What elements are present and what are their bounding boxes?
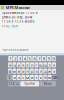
staticText: 3 [19, 56, 21, 61]
staticText: э [53, 68, 55, 74]
button[interactable]: р [30, 69, 34, 74]
button[interactable]: т [34, 75, 38, 80]
staticText: Пробел [24, 82, 35, 85]
staticText: 6 [33, 56, 35, 61]
button[interactable]: е [26, 62, 30, 67]
button[interactable]: щ [43, 62, 47, 67]
staticText: б [44, 75, 46, 80]
staticText: 1 [9, 56, 11, 61]
button[interactable]: ю [48, 75, 52, 80]
button[interactable]: 5 [27, 56, 32, 61]
staticText: Отдел [11, 24, 19, 28]
button[interactable]: х [52, 62, 56, 67]
staticText: 2 [14, 56, 16, 61]
button[interactable]: 8 [42, 56, 46, 61]
button[interactable]: к [21, 62, 25, 67]
staticText: ь [40, 75, 42, 80]
staticText: 8 [43, 56, 45, 61]
button[interactable]: й [8, 62, 12, 67]
button[interactable]: б [43, 75, 47, 80]
button[interactable]: и [30, 75, 34, 80]
staticText: 5 [29, 56, 31, 61]
button[interactable]: MPS Moscow [0, 5, 64, 10]
button[interactable]: ь [39, 75, 43, 80]
staticText: Кому: [2, 24, 10, 28]
staticText: м [26, 75, 29, 80]
staticText: е [27, 62, 29, 67]
staticText: я [13, 75, 15, 80]
button[interactable]: 1 [8, 56, 12, 61]
staticText: и [31, 75, 33, 80]
button[interactable]: 6 [32, 56, 36, 61]
staticText: 123 [8, 82, 14, 85]
button[interactable]: з [48, 62, 52, 67]
staticText: к [22, 62, 24, 67]
button[interactable]: ы [12, 69, 16, 74]
staticText: о [35, 68, 37, 74]
staticText: в [18, 68, 20, 74]
button[interactable]: я [12, 75, 16, 80]
staticText: п [27, 68, 29, 74]
staticText: ⇧ [8, 75, 11, 80]
button[interactable]: 2 [13, 56, 17, 61]
staticText: а [22, 68, 24, 74]
staticText: г [35, 62, 37, 67]
button[interactable]: г [34, 62, 38, 67]
button[interactable]: Пробел [20, 81, 39, 86]
staticText: щ [43, 62, 47, 67]
button[interactable]: 9 [47, 56, 51, 61]
staticText: 7 [38, 56, 40, 61]
staticText: т [35, 75, 37, 80]
button[interactable]: ☺ [15, 81, 20, 86]
staticText: с [22, 75, 24, 80]
staticText: й [9, 62, 11, 67]
button[interactable]: п [26, 69, 30, 74]
button[interactable]: н [30, 62, 34, 67]
staticText: х [53, 62, 55, 67]
staticText: ф [8, 68, 11, 74]
button[interactable]: м [26, 75, 30, 80]
button[interactable]: 123 [8, 81, 15, 86]
button[interactable]: а [21, 69, 25, 74]
button[interactable]: 3 [18, 56, 22, 61]
staticText: ш [39, 62, 43, 67]
staticText: д [44, 68, 46, 74]
button[interactable]: ч [17, 75, 21, 80]
staticText: н [31, 62, 33, 67]
button[interactable]: Ввод [40, 81, 56, 86]
staticText: ⌫ [52, 75, 58, 80]
button[interactable]: л [39, 69, 43, 74]
staticText: з [49, 62, 51, 67]
staticText: 9 [48, 56, 50, 61]
staticText: ю [48, 75, 51, 80]
staticText: ы [13, 68, 16, 74]
staticText: Приложение до 17:00 и [2, 11, 38, 15]
staticText: 4 [24, 56, 26, 61]
button[interactable]: ц [12, 62, 16, 67]
staticText: р [31, 68, 33, 74]
button[interactable]: в [17, 69, 21, 74]
button[interactable]: д [43, 69, 47, 74]
staticText: 11:58 в 15–16 апреля [2, 20, 35, 23]
button[interactable]: ⌫ [52, 75, 57, 80]
staticText: Ввод [44, 82, 52, 85]
staticText: ☺ [16, 82, 19, 85]
button[interactable]: э [52, 69, 56, 74]
button[interactable]: ж [48, 69, 52, 74]
button[interactable]: о [34, 69, 38, 74]
staticText: ц [13, 62, 15, 67]
staticText: MPS Moscow [5, 5, 29, 10]
button[interactable]: с [21, 75, 25, 80]
button[interactable]: 4 [23, 56, 27, 61]
button[interactable]: ⇧ [7, 75, 12, 80]
button[interactable]: ш [39, 62, 43, 67]
button[interactable]: 7 [37, 56, 41, 61]
staticText: детали до след. срока [2, 15, 32, 19]
button[interactable]: 0 [51, 56, 56, 61]
staticText: Черновик сохранён [2, 48, 29, 52]
button[interactable]: у [17, 62, 21, 67]
staticText: ч [18, 75, 20, 80]
staticText: ж [48, 68, 51, 74]
button[interactable]: ф [8, 69, 12, 74]
staticText: у [18, 62, 20, 67]
